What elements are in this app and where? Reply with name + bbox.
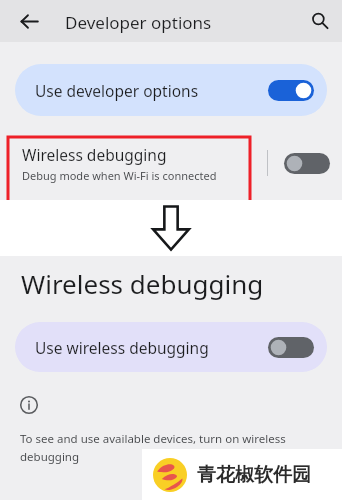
staticText: To see and use available devices, turn o… bbox=[20, 431, 286, 447]
staticText: Wireless debugging bbox=[22, 144, 167, 165]
button[interactable]: Wireless debugging bbox=[0, 126, 342, 200]
button[interactable]: Use developer options bbox=[15, 64, 327, 116]
staticText: Use wireless debugging bbox=[35, 337, 268, 358]
staticText: 青花椒软件园 bbox=[197, 463, 311, 487]
staticText: debugging bbox=[20, 449, 80, 465]
staticText: Use developer options bbox=[35, 80, 268, 101]
button[interactable] bbox=[284, 153, 330, 174]
button[interactable]: Use wireless debugging bbox=[15, 322, 327, 372]
staticText: Developer options bbox=[65, 11, 212, 34]
button[interactable]: Search bbox=[304, 5, 336, 37]
staticText: Debug mode when Wi-Fi is connected bbox=[22, 168, 217, 183]
staticText: Wireless debugging bbox=[21, 266, 264, 301]
button[interactable]: Back bbox=[13, 5, 45, 37]
